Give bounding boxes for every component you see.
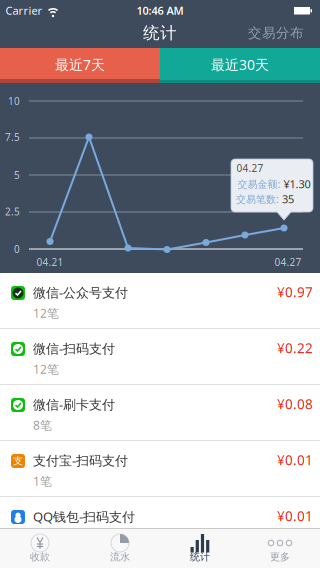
staticText: 收款: [30, 551, 50, 563]
button[interactable]: 流水: [85, 528, 155, 568]
staticText: ¥0.22: [277, 339, 313, 357]
staticText: 支付宝-扫码支付: [33, 452, 128, 469]
button[interactable]: QQ钱包-扫码支付: [0, 497, 320, 553]
button[interactable]: 最近7天: [0, 48, 160, 83]
staticText: 流水: [110, 551, 130, 563]
button[interactable]: 统计: [143, 23, 177, 43]
staticText: ¥0.01: [277, 507, 313, 525]
button[interactable]: 微信-刷卡支付: [0, 385, 320, 441]
staticText: 支: [13, 455, 23, 467]
button[interactable]: 最近30天: [160, 48, 320, 83]
staticText: 4笔: [33, 529, 52, 545]
button[interactable]: 支: [0, 441, 320, 497]
staticText: ¥0.01: [277, 451, 313, 469]
staticText: Carrier: [5, 3, 42, 18]
staticText: 最近7天: [55, 55, 105, 74]
staticText: 35: [282, 191, 294, 206]
button[interactable]: 收款: [5, 528, 75, 568]
staticText: 微信-公众号支付: [33, 284, 128, 301]
button[interactable]: 统计: [165, 528, 235, 568]
staticText: 04.21: [36, 255, 63, 269]
staticText: ¥0.08: [277, 395, 313, 413]
staticText: 最近30天: [211, 55, 269, 74]
button[interactable]: 交易分布: [248, 24, 304, 41]
button[interactable]: 更多: [245, 528, 315, 568]
staticText: 8笔: [33, 417, 52, 433]
staticText: 04.27: [274, 255, 301, 269]
staticText: ¥1.30: [283, 176, 310, 191]
staticText: 交易笔数:: [236, 192, 279, 206]
staticText: 2.5: [5, 205, 20, 218]
staticText: 交易金额:: [237, 177, 280, 191]
button[interactable]: 微信-扫码支付: [0, 329, 320, 385]
staticText: 12笔: [33, 361, 59, 377]
staticText: 10:46 AM: [136, 3, 183, 18]
staticText: ¥0.97: [277, 283, 313, 301]
staticText: 更多: [270, 551, 290, 563]
button[interactable]: 微信-公众号支付: [0, 273, 320, 329]
staticText: 04.27: [236, 161, 263, 175]
staticText: QQ钱包-扫码支付: [33, 508, 135, 525]
staticText: 12笔: [33, 305, 59, 321]
staticText: 微信-扫码支付: [33, 340, 115, 357]
staticText: 微信-刷卡支付: [33, 396, 115, 413]
staticText: 统计: [190, 551, 210, 563]
staticText: 统计: [143, 23, 177, 43]
staticText: 10: [8, 94, 20, 108]
staticText: 1笔: [33, 473, 52, 489]
staticText: 交易分布: [248, 24, 304, 41]
staticText: 7.5: [5, 130, 20, 144]
staticText: 5: [14, 168, 20, 182]
staticText: 0: [14, 242, 20, 256]
